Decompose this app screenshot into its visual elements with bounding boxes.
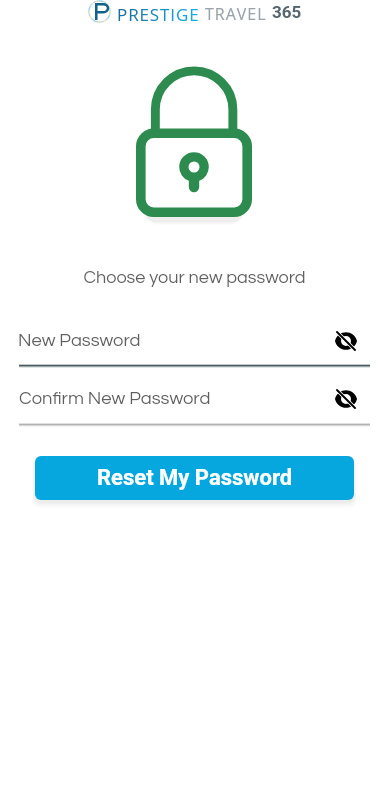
staticText: TRAVEL — [205, 3, 267, 25]
staticText: Choose your new password — [0, 268, 389, 287]
staticText: Reset My Password — [97, 465, 293, 491]
staticText: Confirm New Password — [19, 389, 211, 408]
button[interactable]: Show confirm new password — [330, 383, 362, 415]
button[interactable]: Show new password — [330, 325, 362, 357]
staticText: New Password — [18, 331, 141, 350]
staticText: PRESTIGE — [117, 3, 200, 26]
button[interactable]: Reset My Password — [35, 456, 354, 500]
staticText: 365 — [272, 2, 302, 22]
